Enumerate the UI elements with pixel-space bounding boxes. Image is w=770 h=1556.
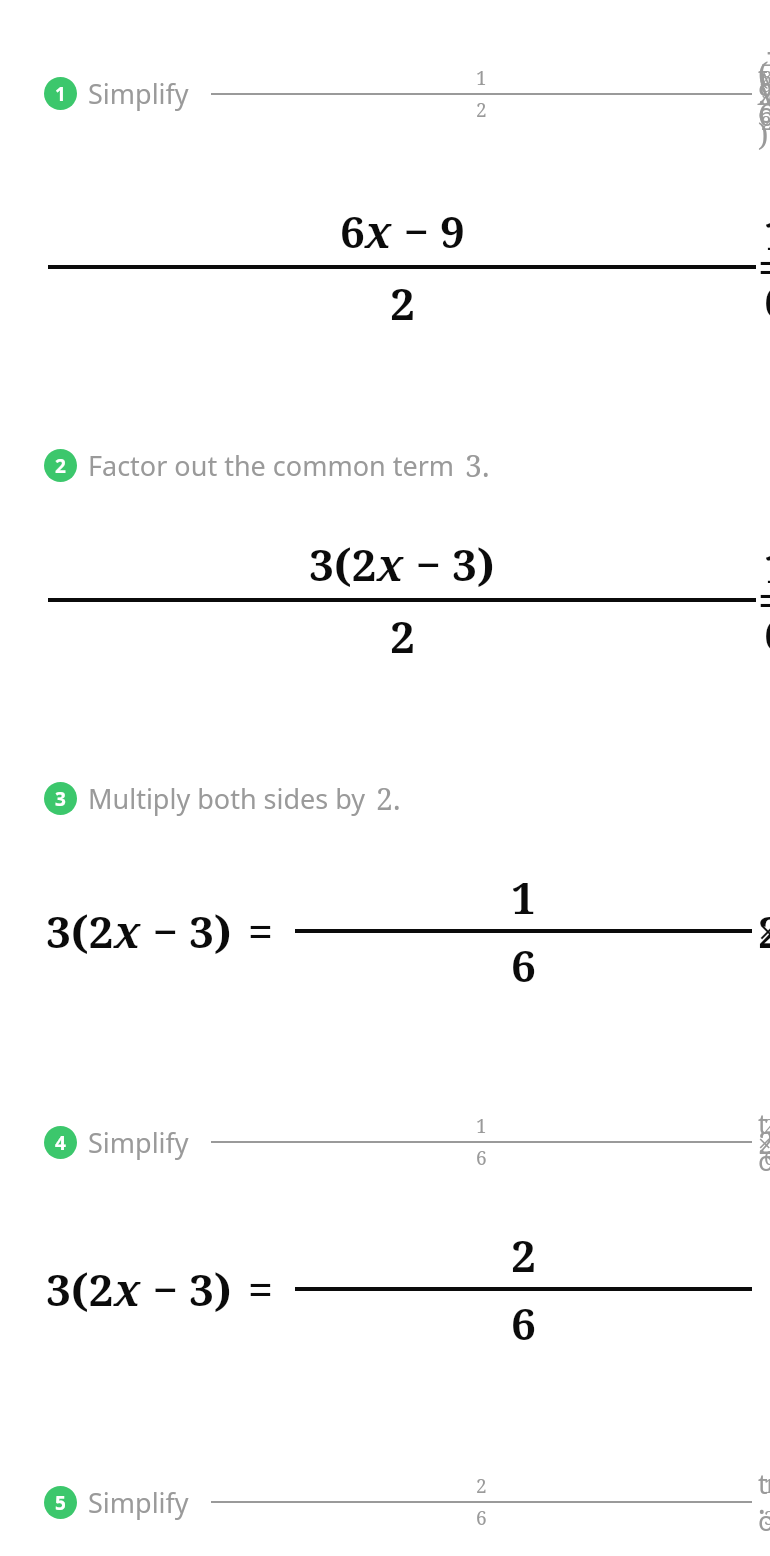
- staticText: − 3): [141, 1259, 232, 1319]
- staticText: =: [248, 1259, 273, 1319]
- staticText: .: [393, 778, 401, 819]
- staticText: 3: [465, 445, 482, 486]
- button[interactable]: 2: [0, 445, 770, 666]
- staticText: x: [114, 1259, 141, 1319]
- staticText: =: [248, 901, 273, 961]
- staticText: 2: [376, 778, 393, 819]
- staticText: 6: [476, 1505, 487, 1531]
- staticText: 5: [55, 1490, 66, 1516]
- staticText: 2: [390, 606, 415, 666]
- staticText: 3: [55, 786, 66, 812]
- staticText: 6: [340, 201, 365, 261]
- staticText: − 3): [141, 901, 232, 961]
- staticText: 3(2: [46, 901, 114, 961]
- staticText: 6: [511, 1293, 536, 1353]
- staticText: 1: [511, 867, 536, 927]
- staticText: Simplify: [88, 1484, 189, 1521]
- staticText: 6: [476, 1145, 487, 1171]
- button[interactable]: 5: [0, 1465, 770, 1556]
- other: Step by step solution: [0, 0, 770, 1556]
- button[interactable]: 1: [0, 32, 770, 333]
- staticText: 2: [511, 1225, 536, 1285]
- staticText: Simplify: [88, 1124, 189, 1161]
- staticText: 1: [55, 81, 66, 107]
- staticText: 1: [476, 65, 487, 91]
- staticText: x: [365, 201, 392, 261]
- button[interactable]: 3: [0, 778, 770, 995]
- staticText: .: [482, 445, 490, 486]
- staticText: Factor out the common term: [88, 447, 455, 484]
- staticText: 2: [55, 453, 66, 479]
- staticText: 2: [476, 97, 487, 123]
- staticText: 3(2: [309, 534, 377, 594]
- staticText: 3(2: [46, 1259, 114, 1319]
- staticText: x: [114, 901, 141, 961]
- staticText: − 3): [404, 534, 495, 594]
- staticText: Simplify: [88, 75, 189, 112]
- staticText: 1: [476, 1113, 487, 1139]
- button[interactable]: 4: [0, 1105, 770, 1353]
- staticText: 2: [476, 1473, 487, 1499]
- staticText: x: [377, 534, 404, 594]
- staticText: Multiply both sides by: [88, 780, 366, 817]
- staticText: − 9: [392, 201, 465, 261]
- staticText: 2: [390, 273, 415, 333]
- staticText: 4: [55, 1130, 66, 1156]
- staticText: 6: [511, 935, 536, 995]
